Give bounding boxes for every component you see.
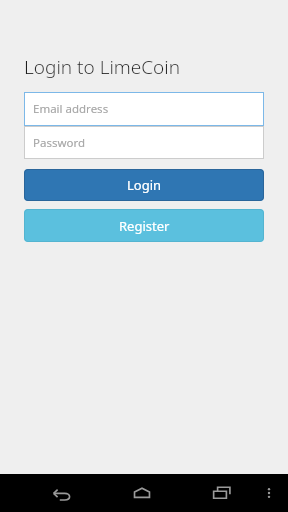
- staticText: Register: [119, 217, 170, 235]
- button[interactable]: Password: [24, 126, 264, 159]
- button[interactable]: Back: [44, 475, 80, 511]
- staticText: Login: [127, 176, 162, 194]
- button[interactable]: Register: [24, 209, 264, 242]
- button[interactable]: Login: [24, 169, 264, 201]
- staticText: Login to LimeCoin: [24, 54, 181, 80]
- button[interactable]: Home: [124, 475, 160, 511]
- staticText: Email address: [33, 101, 109, 117]
- button[interactable]: Email address: [24, 92, 264, 126]
- button[interactable]: More options: [254, 478, 284, 508]
- staticText: Password: [33, 135, 86, 151]
- button[interactable]: Recent apps: [204, 475, 240, 511]
